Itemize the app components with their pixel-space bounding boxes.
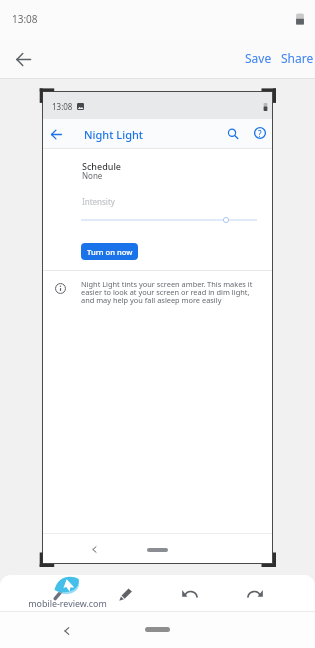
staticText: 13:08 [12, 12, 38, 26]
staticText: Schedule [82, 160, 121, 172]
staticText: Save [245, 50, 272, 66]
staticText: ? [258, 128, 262, 139]
button[interactable]: Turn on now [81, 243, 138, 260]
button[interactable]: Share [273, 45, 315, 71]
button[interactable]: Back [7, 43, 39, 75]
staticText: 13:08 [52, 101, 73, 112]
staticText: Turn on now [87, 247, 133, 257]
staticText: mobile-review.com [28, 597, 107, 609]
button[interactable]: Undo [174, 577, 206, 609]
staticText: Intensity [82, 196, 115, 207]
button[interactable]: Draw [110, 577, 142, 609]
button[interactable]: Home [145, 627, 170, 632]
staticText: Share [281, 50, 314, 66]
staticText: None [82, 170, 103, 181]
staticText: Night Light [84, 127, 144, 142]
button[interactable]: Back [52, 616, 82, 646]
button[interactable]: Redo [239, 577, 271, 609]
button[interactable]: Crop [46, 577, 78, 609]
button[interactable]: Save [237, 45, 280, 71]
staticText: Night Light tints your screen amber. Thi… [81, 279, 253, 305]
